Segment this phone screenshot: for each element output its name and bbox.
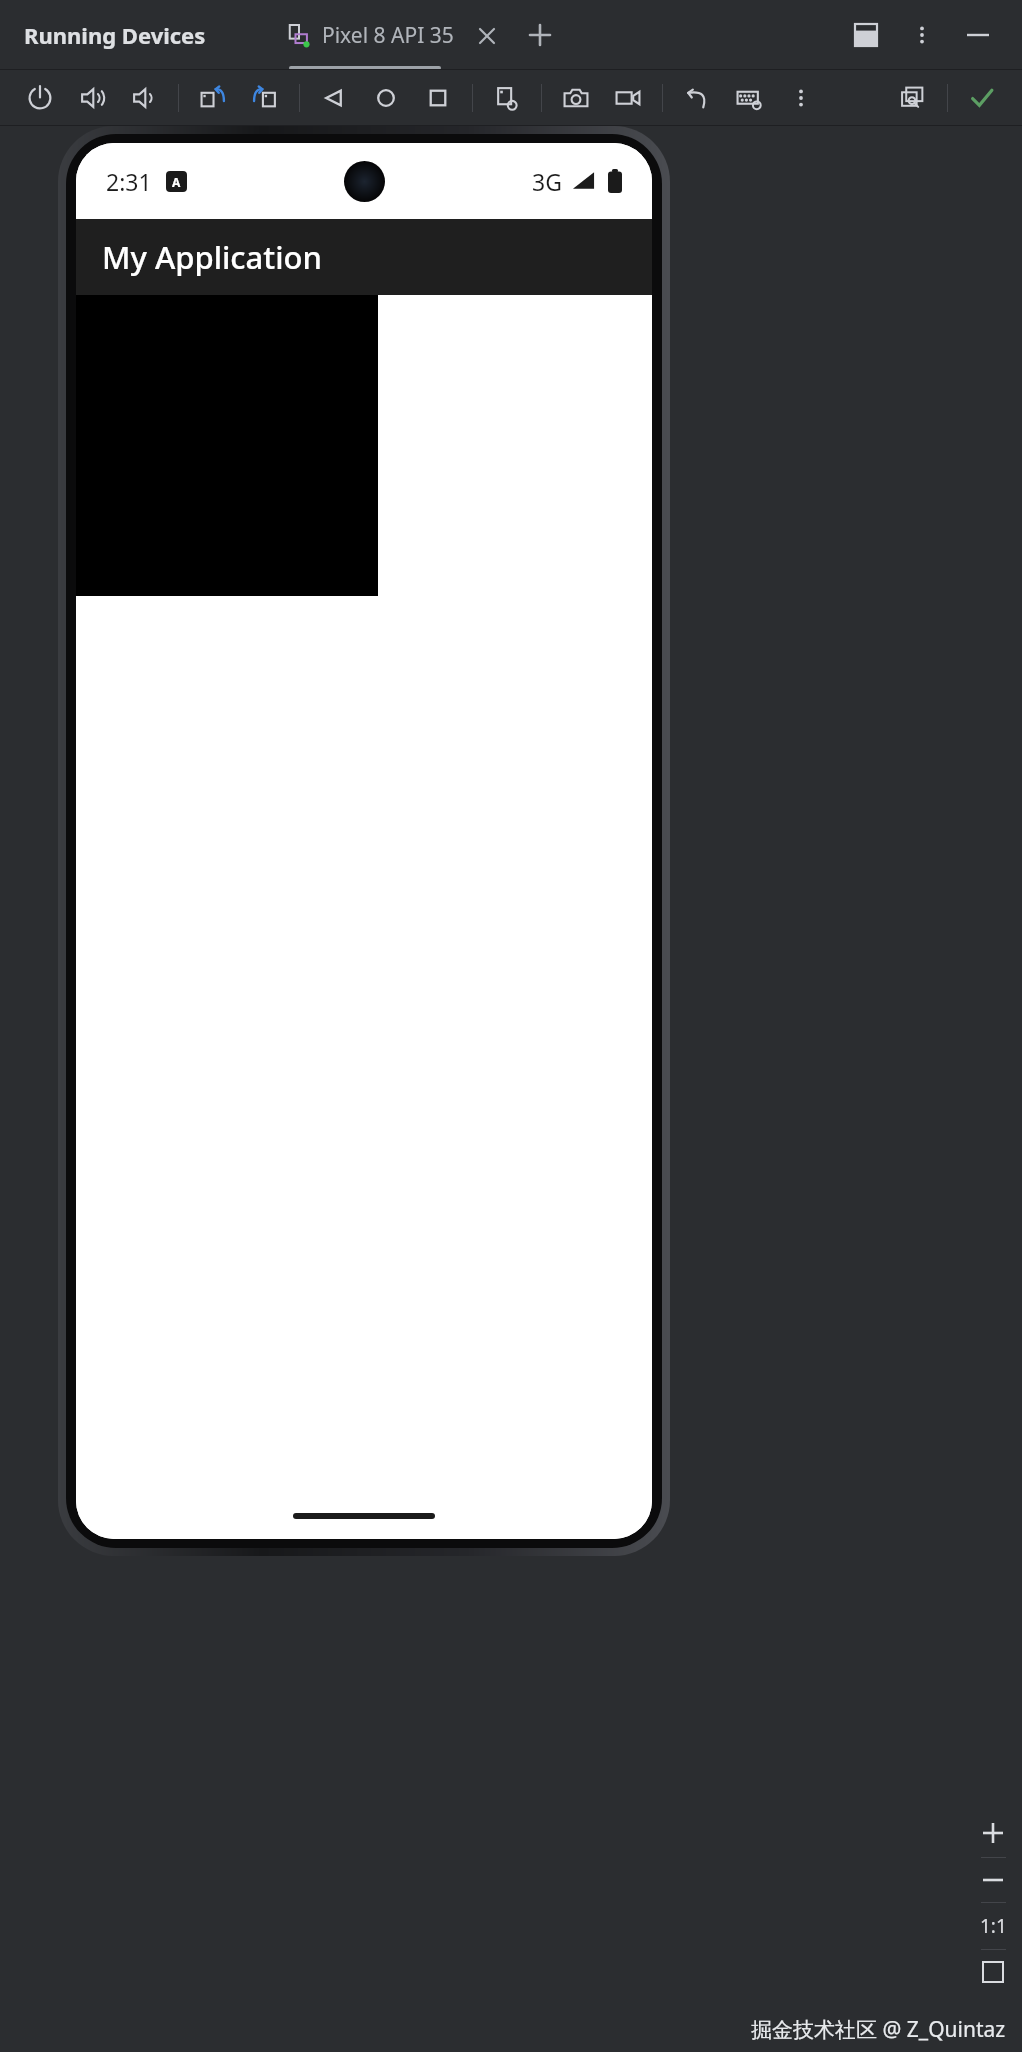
button[interactable]: 1:1 — [970, 1903, 1016, 1949]
button[interactable]: Rotate left — [187, 74, 239, 122]
button[interactable]: Volume down — [118, 74, 170, 122]
button[interactable]: Pixel 8 API 35 — [278, 13, 508, 58]
button[interactable]: Keyboard — [723, 74, 775, 122]
staticText: My Application — [102, 236, 322, 278]
button[interactable]: Overview — [412, 74, 464, 122]
button[interactable]: Power — [14, 74, 66, 122]
button[interactable]: Inspect — [887, 74, 939, 122]
staticText: 掘金技术社区 @ Z_Quintaz — [751, 2015, 1006, 2044]
button[interactable]: More options — [900, 13, 944, 57]
staticText: 2:31 — [106, 166, 152, 197]
button[interactable]: Zoom in — [970, 1809, 1016, 1857]
button[interactable]: Volume up — [66, 74, 118, 122]
button[interactable]: Back — [308, 74, 360, 122]
staticText: Running Devices — [24, 20, 206, 50]
staticText: 3G — [532, 166, 562, 197]
button[interactable]: Screenshot — [550, 74, 602, 122]
button[interactable]: Done — [956, 74, 1008, 122]
button[interactable]: Close tab — [476, 25, 498, 47]
button[interactable]: New tab — [520, 15, 560, 55]
button[interactable]: Rotate right — [239, 74, 291, 122]
button[interactable]: Zoom out — [970, 1858, 1016, 1902]
button[interactable]: Fit to window — [970, 1950, 1016, 1994]
button[interactable]: Home — [360, 74, 412, 122]
staticText: 1:1 — [980, 1913, 1007, 1939]
button[interactable]: Device settings — [481, 74, 533, 122]
button[interactable]: More — [775, 74, 827, 122]
button[interactable]: Minimize — [956, 13, 1000, 57]
staticText: A — [172, 174, 181, 190]
button[interactable]: Undo — [671, 74, 723, 122]
button[interactable]: Running Devices — [22, 14, 208, 56]
button[interactable]: Layout options — [844, 13, 888, 57]
staticText: Pixel 8 API 35 — [322, 21, 454, 50]
button[interactable]: Record screen — [602, 74, 654, 122]
